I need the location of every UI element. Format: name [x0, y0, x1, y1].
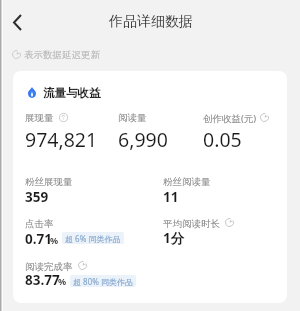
- staticText: 展现量: [25, 112, 54, 124]
- staticText: 超 6% 同类作品: [65, 233, 121, 244]
- staticText: 阅读量: [118, 112, 147, 124]
- staticText: 83.77: [25, 271, 60, 289]
- staticText: 流量与收益: [43, 86, 101, 100]
- staticText: 创作收益(元): [203, 112, 257, 125]
- staticText: 粉丝阅读量: [163, 176, 211, 188]
- button[interactable]: 超 80% 同类作品: [70, 275, 136, 287]
- staticText: %: [58, 275, 67, 287]
- staticText: 阅读完成率: [25, 261, 73, 273]
- staticText: 11: [163, 188, 179, 206]
- staticText: 0.05: [203, 126, 242, 153]
- staticText: 作品详细数据: [109, 13, 193, 31]
- staticText: 6,990: [118, 126, 168, 153]
- staticText: 平均阅读时长: [163, 218, 220, 230]
- button[interactable]: Back: [0, 5, 35, 40]
- staticText: 超 80% 同类作品: [73, 276, 133, 287]
- staticText: %: [50, 234, 59, 246]
- staticText: 0.71: [25, 230, 52, 248]
- staticText: 表示数据延迟更新: [24, 49, 100, 61]
- staticText: 1分: [163, 229, 185, 247]
- staticText: 点击率: [25, 218, 54, 230]
- button[interactable]: 超 6% 同类作品: [62, 232, 124, 244]
- staticText: 粉丝展现量: [25, 176, 73, 188]
- staticText: 974,821: [25, 126, 98, 153]
- staticText: 359: [25, 188, 49, 206]
